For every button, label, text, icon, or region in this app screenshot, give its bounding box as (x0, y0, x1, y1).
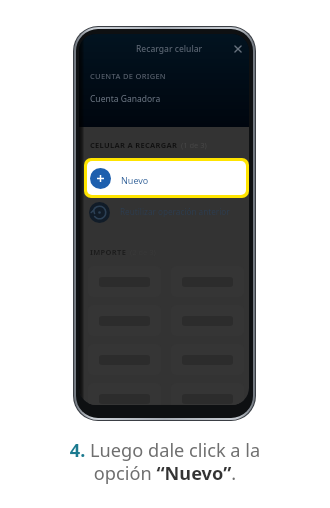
button[interactable] (171, 383, 244, 405)
staticText: CUENTA DE ORIGEN (90, 71, 166, 81)
button[interactable] (171, 344, 244, 375)
button[interactable] (171, 305, 244, 336)
button[interactable]: Cerrar (231, 42, 245, 56)
staticText: Cuenta Ganadora (90, 93, 161, 105)
button[interactable] (88, 266, 161, 297)
staticText: Reutilizar operación anterior (120, 206, 230, 217)
staticText: IMPORTE (90, 247, 127, 257)
button[interactable] (88, 383, 161, 405)
button[interactable] (88, 344, 161, 375)
button[interactable] (171, 266, 244, 297)
staticText: 4. Luego dale click a la opción “Nuevo”. (58, 438, 272, 485)
staticText: Nuevo (121, 174, 149, 186)
button[interactable]: Reutilizar operación anterior (84, 200, 249, 226)
staticText: Recargar celular (136, 43, 203, 55)
staticText: CELULAR A RECARGAR (90, 140, 178, 150)
button[interactable] (88, 305, 161, 336)
staticText: (1 de 3) (181, 140, 207, 150)
button[interactable]: Nuevo (87, 161, 246, 195)
